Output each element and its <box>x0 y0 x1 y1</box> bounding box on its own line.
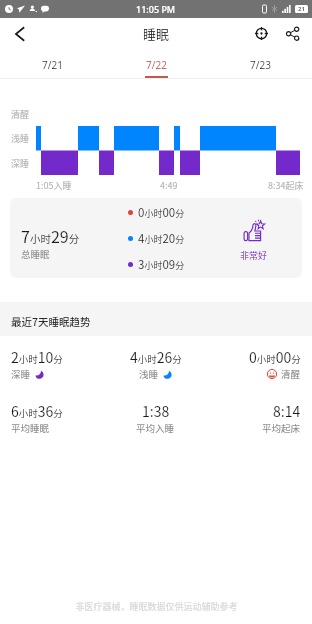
staticText: 4小时26分 <box>130 347 182 367</box>
staticText: 6小时36分 <box>11 401 63 421</box>
staticText: 清醒 <box>11 108 30 121</box>
staticText: 1:38 <box>142 401 170 421</box>
staticText: 平均起床 <box>262 421 301 435</box>
staticText: 浅睡 <box>139 367 159 381</box>
staticText: 7/22 <box>146 58 167 72</box>
staticText: 11:05 PM <box>136 3 176 15</box>
staticText: 非常好 <box>240 249 268 262</box>
staticText: 平均睡眠 <box>11 421 50 435</box>
button[interactable]: 7/23 <box>208 45 312 79</box>
staticText: 21 <box>298 5 305 13</box>
button[interactable]: Target <box>248 20 274 46</box>
button[interactable]: Back <box>0 21 38 47</box>
staticText: 4:49 <box>160 179 178 192</box>
staticText: 0小时00分 <box>249 347 301 367</box>
staticText: 浅睡 <box>11 132 30 145</box>
button[interactable]: 7小时29分 <box>10 198 302 278</box>
staticText: 最近7天睡眠趋势 <box>11 314 91 329</box>
staticText: 平均入睡 <box>136 421 175 435</box>
staticText: 2小时10分 <box>11 347 63 367</box>
button[interactable]: 7/22 <box>104 45 208 79</box>
staticText: 8:14 <box>273 401 301 421</box>
staticText: 总睡眠 <box>21 247 50 261</box>
staticText: 3小时09分 <box>138 256 185 273</box>
staticText: 深睡 <box>11 157 30 170</box>
staticText: 0小时00分 <box>138 204 185 221</box>
staticText: 清醒 <box>281 367 301 381</box>
staticText: 非医疗器械，睡眠数据仅供运动辅助参考 <box>75 600 238 613</box>
staticText: 8:34起床 <box>268 179 304 192</box>
staticText: 睡眠 <box>143 24 170 43</box>
button[interactable]: 7/21 <box>0 45 104 79</box>
staticText: 1:05入睡 <box>36 179 72 192</box>
staticText: 7/23 <box>250 58 271 72</box>
staticText: 深睡 <box>11 367 31 381</box>
staticText: 7小时29分 <box>21 224 80 247</box>
staticText: 4小时20分 <box>138 230 185 247</box>
staticText: 7/21 <box>42 58 63 72</box>
button[interactable]: Share <box>279 20 305 46</box>
